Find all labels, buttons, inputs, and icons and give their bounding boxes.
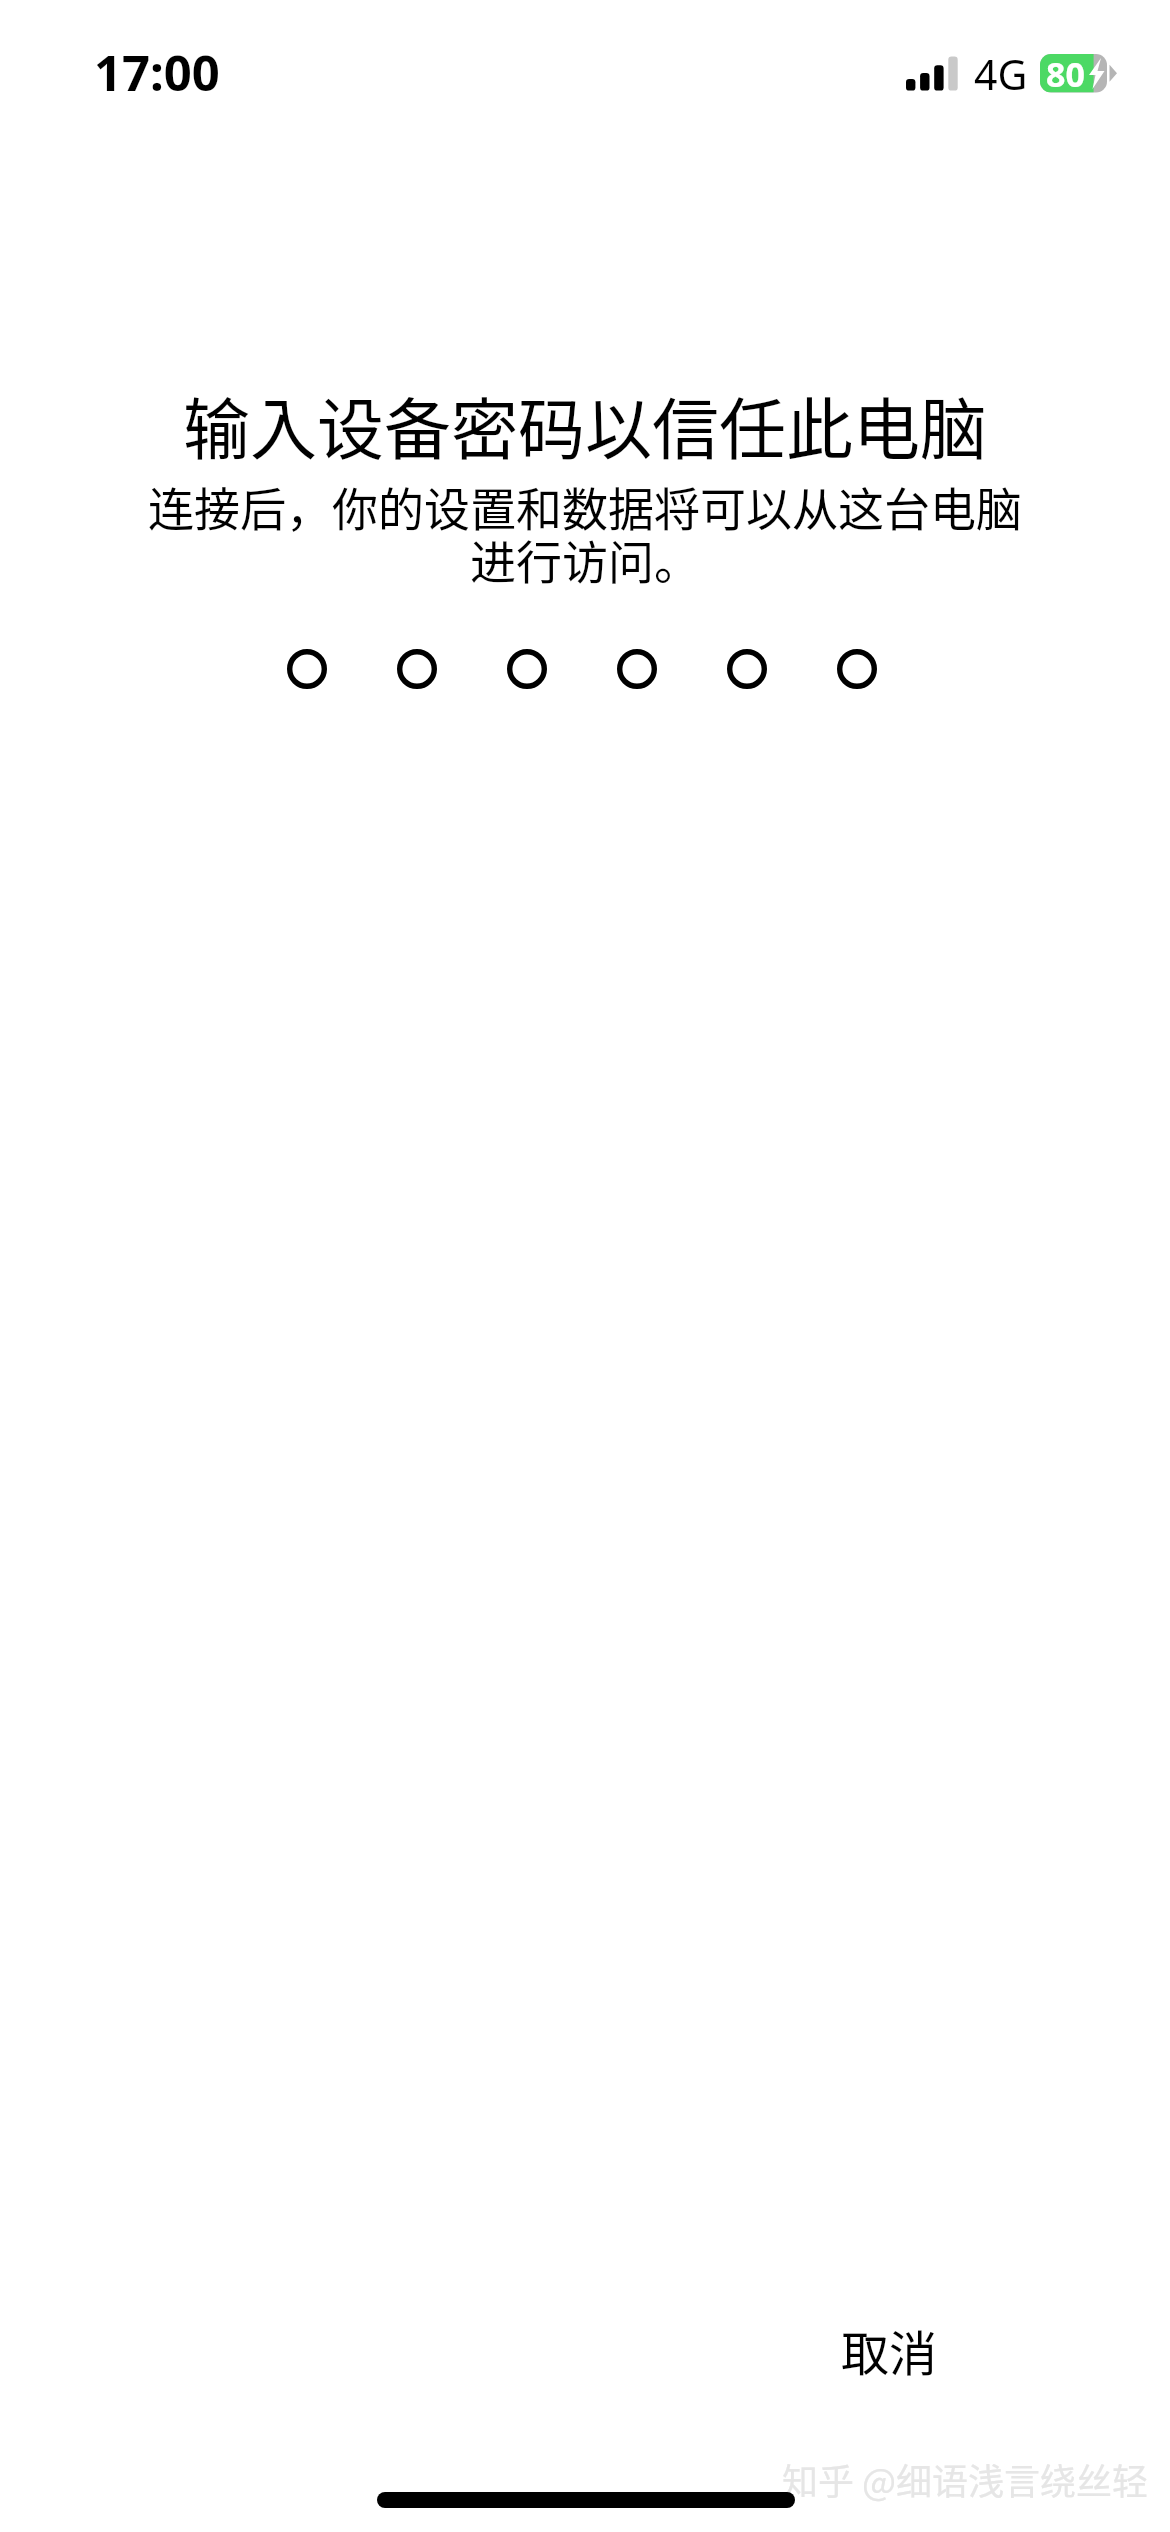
staticText: 连接后，你的设置和数据将可以从这台电脑 进行访问。	[85, 473, 1085, 593]
staticText: 取消	[841, 2315, 938, 2385]
staticText: 4G	[974, 46, 1028, 102]
staticText: 知乎 @细语浅言绕丝轻	[782, 2453, 1149, 2505]
staticText: 80	[1046, 51, 1085, 97]
other: Home indicator	[377, 2492, 795, 2508]
staticText: 输入设备密码以信任此电脑	[183, 376, 987, 473]
other: Cellular signal, 3 of 4 bars	[906, 54, 960, 92]
button[interactable]: 取消	[811, 2299, 968, 2401]
button[interactable]: Passcode field, 6 digits	[287, 649, 877, 689]
other: Battery 80 percent, charging	[1040, 54, 1120, 100]
staticText: 17:00	[94, 39, 220, 106]
